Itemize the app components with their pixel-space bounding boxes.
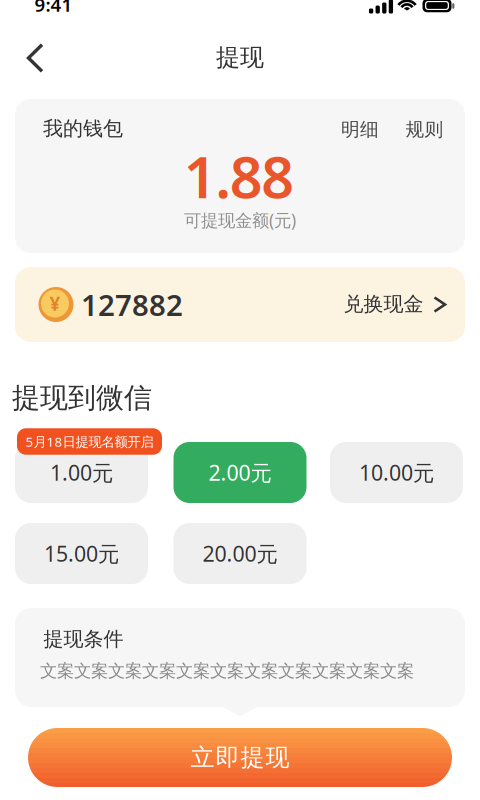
button[interactable]: 10.00元 bbox=[330, 442, 463, 503]
button[interactable]: Back bbox=[26, 43, 44, 73]
staticText: 明细 bbox=[341, 118, 379, 141]
staticText: 1.88 bbox=[184, 138, 294, 214]
staticText: 文案文案文案文案文案文案文案文案文案文案文案 bbox=[40, 660, 414, 682]
button[interactable]: 立即提现 bbox=[28, 728, 452, 787]
staticText: 5月18日提现名额开启 bbox=[25, 433, 153, 450]
button[interactable]: 明细 bbox=[341, 118, 379, 141]
button[interactable]: 1.00元 bbox=[15, 442, 148, 503]
button[interactable]: ¥ bbox=[15, 267, 465, 342]
staticText: 10.00元 bbox=[359, 458, 434, 487]
staticText: 15.00元 bbox=[44, 539, 119, 568]
staticText: ¥ bbox=[49, 291, 60, 316]
staticText: 9:41 bbox=[34, 0, 72, 17]
staticText: 立即提现 bbox=[190, 743, 289, 772]
button[interactable]: 2.00元 bbox=[173, 442, 306, 503]
button[interactable]: 规则 bbox=[405, 118, 443, 141]
staticText: 20.00元 bbox=[202, 539, 277, 568]
staticText: 2.00元 bbox=[208, 458, 271, 487]
staticText: 127882 bbox=[81, 285, 183, 324]
staticText: 我的钱包 bbox=[43, 116, 123, 141]
staticText: 提现 bbox=[216, 43, 264, 72]
staticText: 规则 bbox=[405, 118, 443, 141]
button[interactable]: 15.00元 bbox=[15, 523, 148, 584]
staticText: 兑换现金 bbox=[343, 292, 423, 316]
staticText: 提现到微信 bbox=[12, 381, 152, 415]
staticText: 提现条件 bbox=[43, 627, 123, 651]
button[interactable]: 20.00元 bbox=[173, 523, 306, 584]
staticText: 1.00元 bbox=[50, 458, 113, 487]
staticText: 可提现金额(元) bbox=[184, 208, 296, 231]
